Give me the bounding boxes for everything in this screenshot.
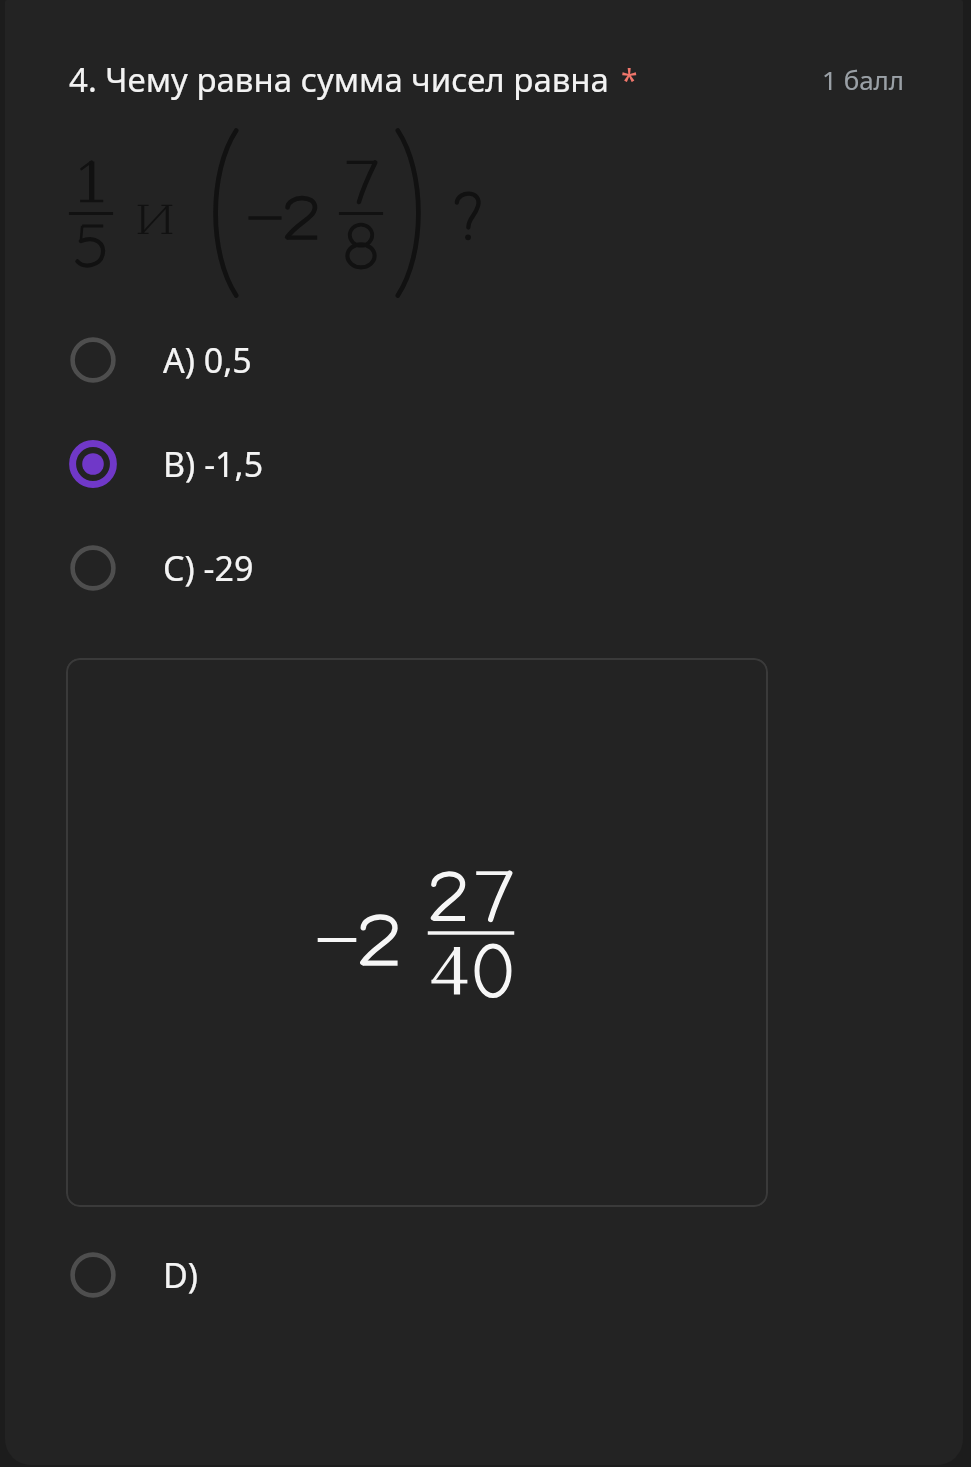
staticText: 1 балл — [822, 62, 905, 97]
staticText: D) — [163, 1252, 199, 1298]
button[interactable]: C) -29 — [5, 516, 963, 620]
staticText: * — [621, 59, 638, 100]
staticText: 4. Чему равна сумма чисел равна — [69, 57, 609, 102]
button[interactable]: B) -1,5 — [5, 412, 963, 516]
staticText: C) -29 — [163, 545, 254, 591]
button[interactable]: A) 0,5 — [5, 308, 963, 412]
staticText: B) -1,5 — [163, 441, 264, 487]
staticText: A) 0,5 — [163, 337, 252, 383]
button[interactable]: D) — [5, 1229, 963, 1321]
